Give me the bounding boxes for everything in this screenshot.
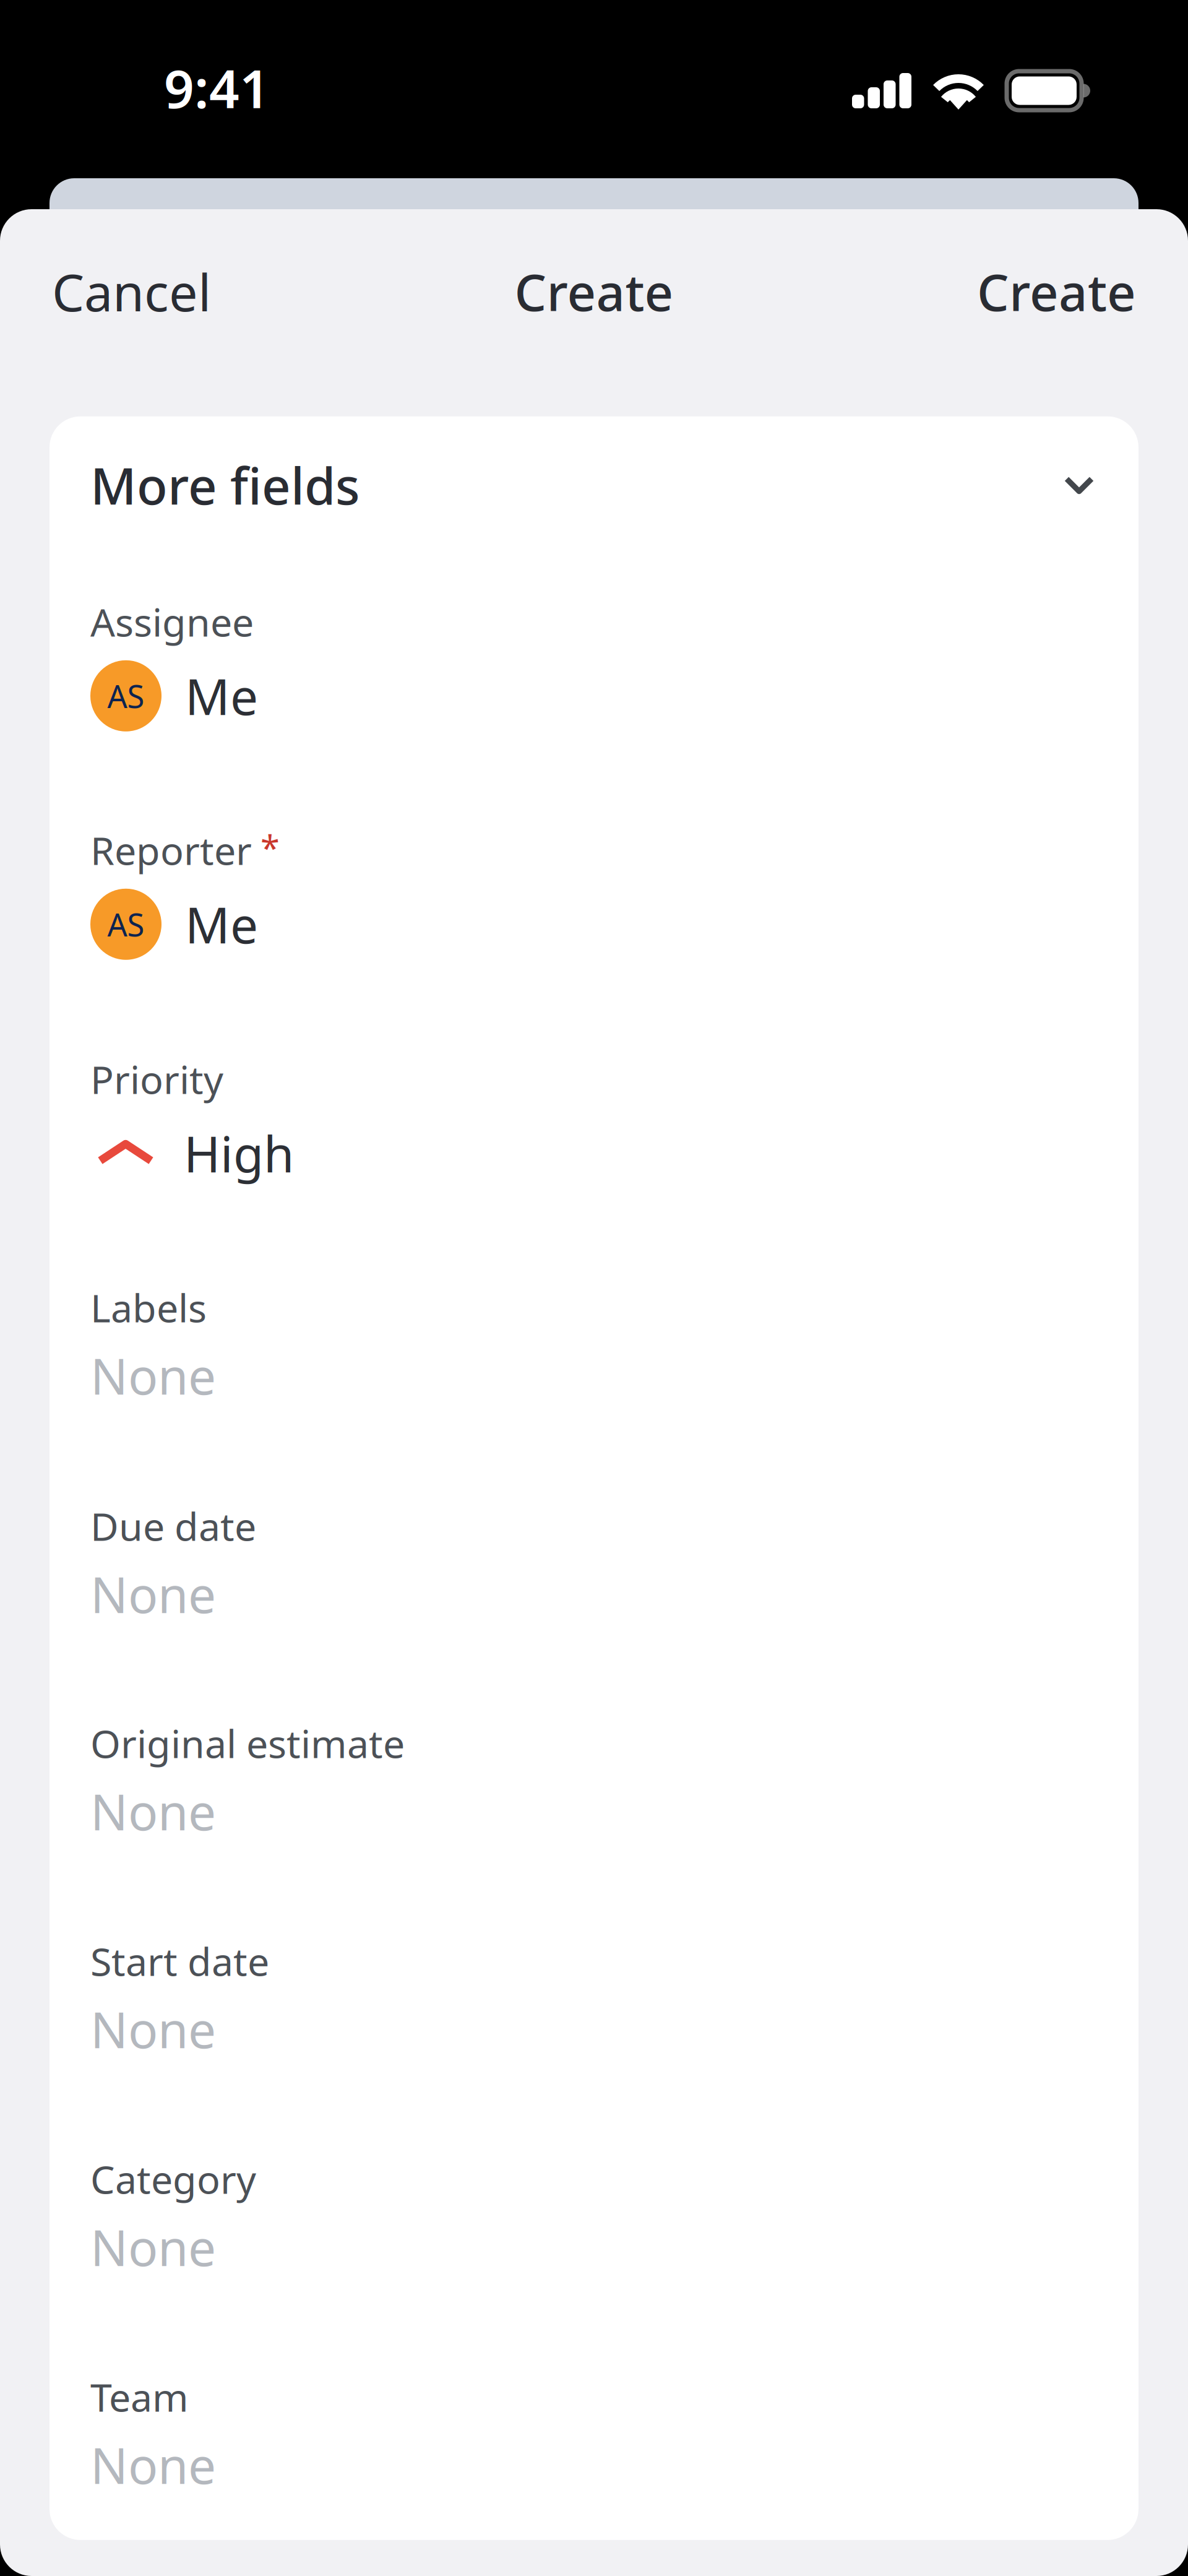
staticText: Cancel — [52, 257, 211, 325]
button[interactable]: Create — [505, 239, 683, 343]
staticText: None — [90, 1561, 216, 1627]
button[interactable]: Category — [90, 2153, 1098, 2371]
button[interactable]: Original estimate — [90, 1717, 1098, 1935]
button[interactable]: Reporter — [90, 824, 1098, 1053]
staticText: * — [260, 824, 280, 870]
staticText: Me — [185, 891, 258, 957]
staticText: Reporter — [90, 824, 252, 876]
staticText: Start date — [90, 1935, 269, 1987]
staticText: More fields — [90, 452, 360, 519]
staticText: None — [90, 2432, 216, 2498]
button[interactable]: Cancel — [42, 239, 221, 344]
button[interactable]: Create — [967, 239, 1146, 343]
staticText: None — [90, 1996, 216, 2062]
staticText: Assignee — [90, 596, 254, 647]
staticText: Team — [90, 2371, 189, 2422]
button[interactable]: Labels — [90, 1282, 1098, 1500]
button[interactable]: Due date — [90, 1500, 1098, 1717]
staticText: AS — [107, 675, 144, 717]
button[interactable]: Collapse More fields — [1053, 469, 1098, 501]
staticText: None — [90, 1343, 216, 1408]
staticText: Me — [185, 663, 258, 729]
staticText: Create — [514, 258, 674, 325]
staticText: Priority — [90, 1053, 223, 1105]
staticText: Labels — [90, 1282, 207, 1333]
staticText: Create — [977, 258, 1136, 325]
staticText: Original estimate — [90, 1717, 405, 1769]
staticText: High — [184, 1120, 294, 1186]
staticText: 9:41 — [164, 53, 270, 123]
button[interactable]: Team — [90, 2371, 1098, 2540]
staticText: None — [90, 2214, 216, 2280]
button[interactable]: Assignee — [90, 596, 1098, 824]
staticText: None — [90, 1778, 216, 1844]
button[interactable]: Start date — [90, 1935, 1098, 2153]
staticText: Due date — [90, 1500, 256, 1552]
button[interactable]: Priority — [90, 1053, 1098, 1282]
staticText: Category — [90, 2153, 256, 2205]
staticText: AS — [107, 903, 144, 945]
